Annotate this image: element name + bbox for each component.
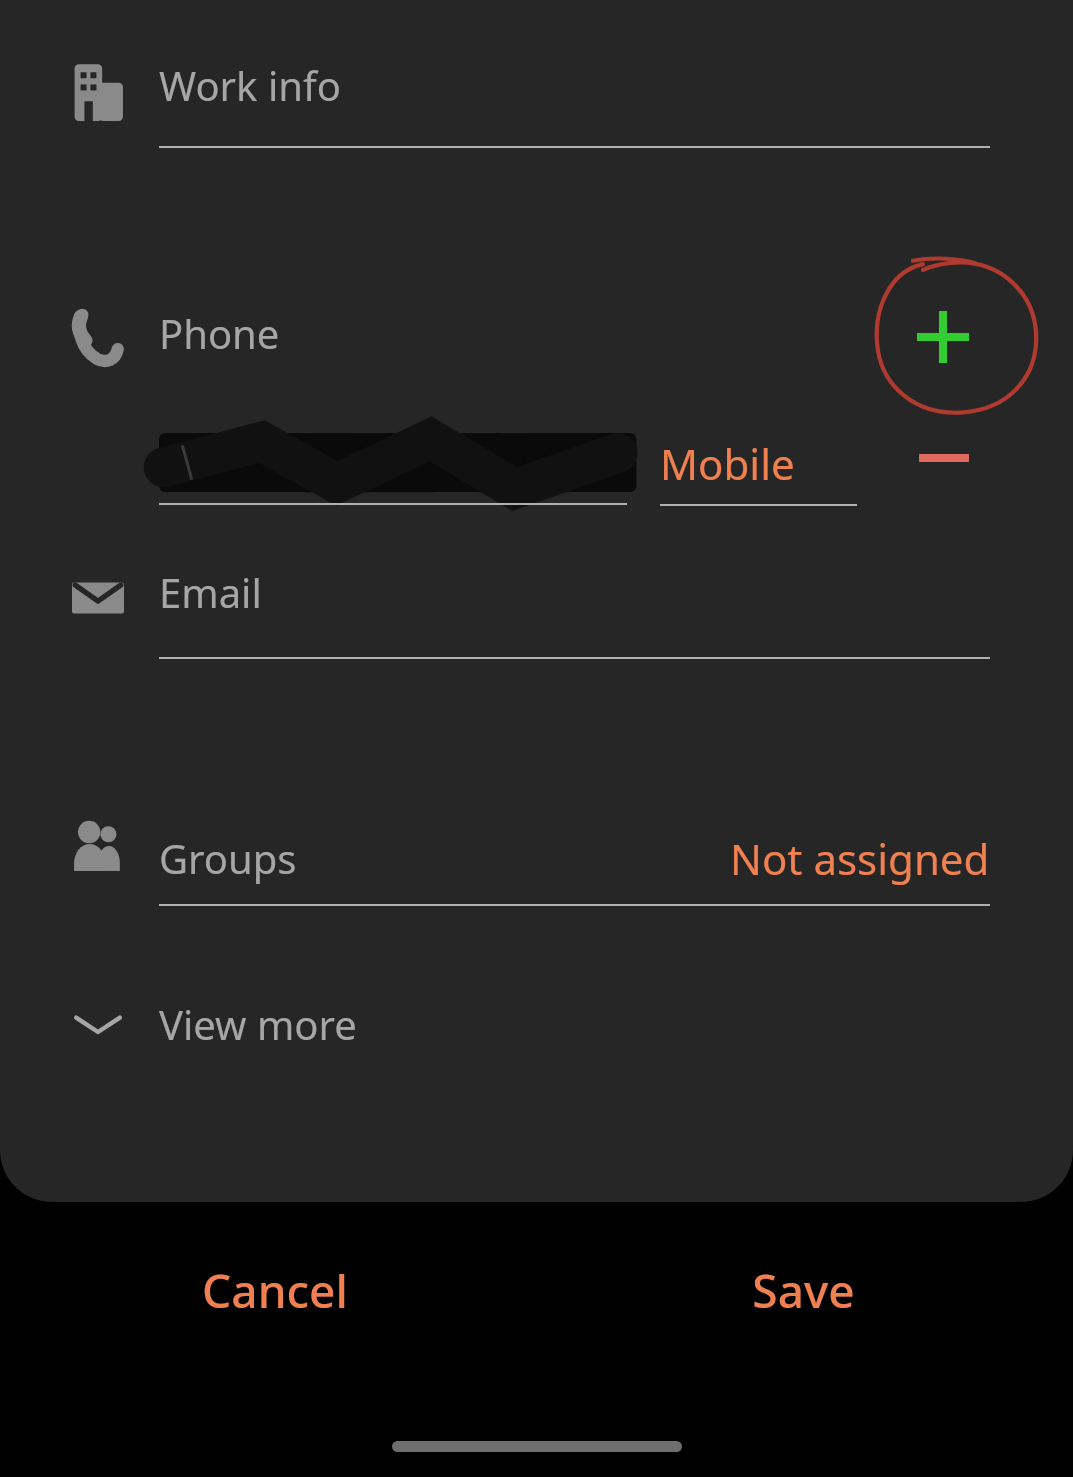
staticText: Groups [159,831,297,885]
button[interactable]: Mobile [660,420,857,506]
staticText: View more [159,997,357,1051]
staticText: Work info [159,58,341,112]
button[interactable]: Groups [159,812,990,904]
button[interactable]: Remove phone number [896,412,992,504]
staticText: Save [752,1259,855,1322]
button[interactable] [159,415,627,510]
staticText: Mobile [660,435,795,492]
button[interactable]: Email [159,565,990,661]
staticText: Not assigned [730,830,990,887]
button[interactable]: Work info [159,58,990,150]
staticText: Phone [159,306,280,360]
button[interactable]: Cancel [130,1235,420,1345]
button[interactable]: Phone [159,306,639,376]
button[interactable]: View more [72,985,990,1063]
button[interactable]: Save [658,1235,948,1345]
staticText: Cancel [202,1259,348,1322]
staticText: Email [159,565,262,619]
button[interactable]: Add phone number [893,287,993,387]
